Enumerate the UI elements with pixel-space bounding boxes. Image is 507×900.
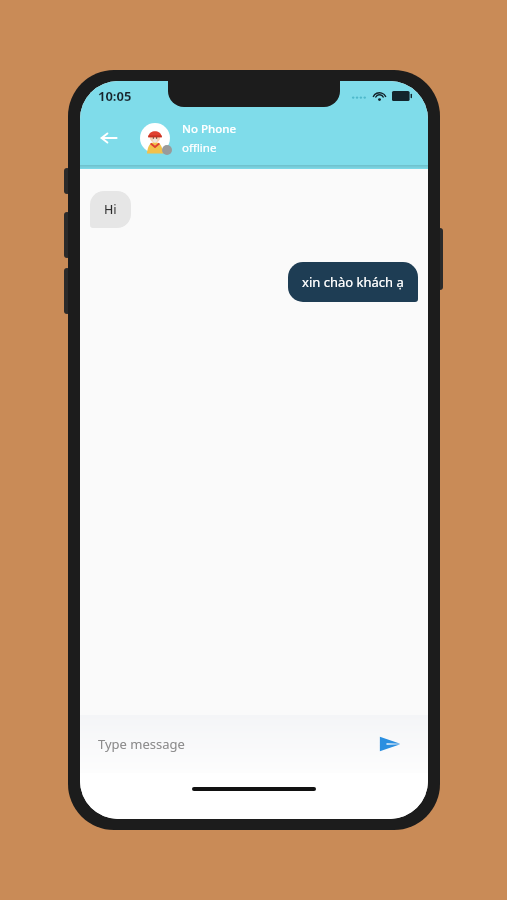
- button[interactable]: No Phone: [140, 121, 414, 156]
- button[interactable]: xin chào khách ạ: [288, 262, 418, 302]
- staticText: No Phone: [182, 121, 237, 137]
- button[interactable]: Back: [92, 121, 126, 155]
- staticText: offline: [182, 140, 217, 156]
- button[interactable]: Hi: [90, 191, 131, 228]
- button[interactable]: Send: [370, 724, 410, 764]
- staticText: Type message: [98, 735, 185, 753]
- staticText: Hi: [104, 201, 117, 218]
- button[interactable]: Type message: [98, 715, 370, 773]
- staticText: xin chào khách ạ: [302, 273, 404, 291]
- staticText: 10:05: [98, 87, 132, 105]
